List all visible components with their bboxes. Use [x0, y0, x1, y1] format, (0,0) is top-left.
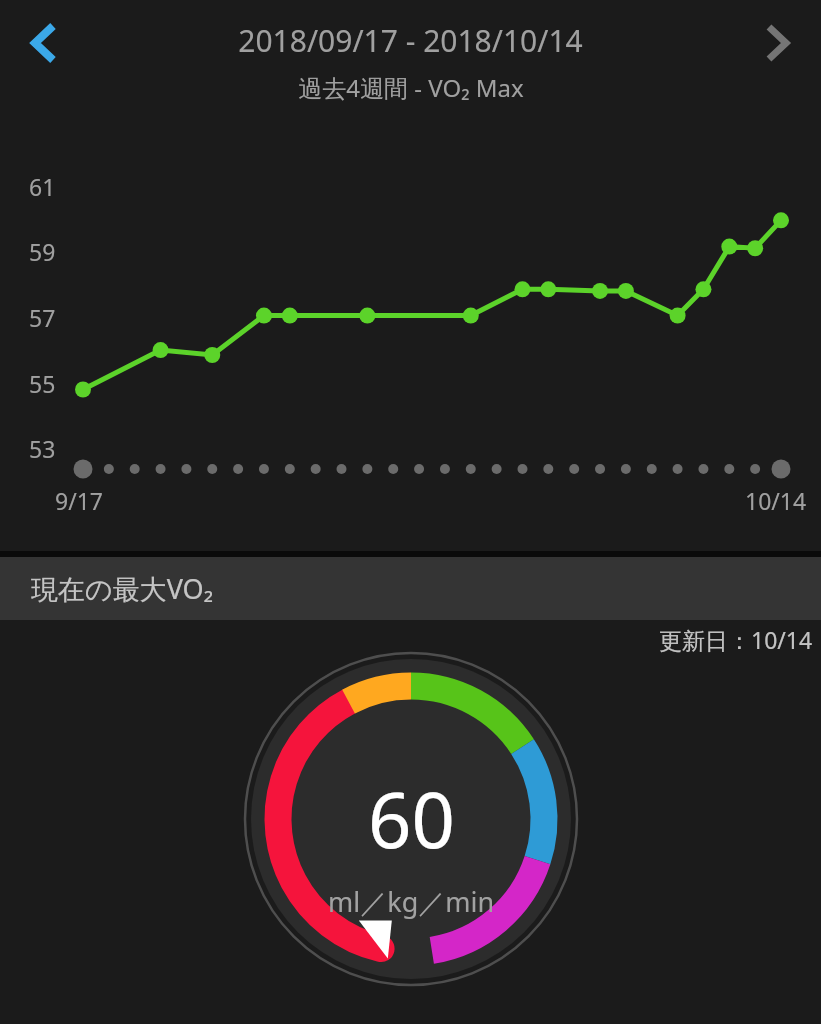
staticText: 61 — [29, 171, 56, 202]
staticText: 10/14 — [745, 485, 807, 516]
staticText: 9/17 — [55, 485, 104, 516]
staticText: 2018/09/17 - 2018/10/14 — [238, 20, 583, 61]
staticText: 59 — [29, 236, 56, 267]
button[interactable]: Previous period — [16, 16, 70, 70]
staticText: 現在の最大VO₂ — [31, 570, 214, 607]
staticText: 57 — [29, 302, 56, 333]
button[interactable]: 60 — [251, 659, 571, 979]
button[interactable]: 現在の最大VO₂ — [0, 557, 821, 620]
staticText: 更新日：10/14 — [659, 624, 813, 655]
staticText: 過去4週間 - VO₂ Max — [298, 71, 524, 104]
staticText: ml／kg／min — [328, 883, 495, 920]
staticText: 60 — [368, 767, 455, 871]
staticText: 53 — [29, 433, 56, 464]
staticText: 55 — [29, 368, 56, 399]
button[interactable]: Next period — [751, 16, 805, 70]
